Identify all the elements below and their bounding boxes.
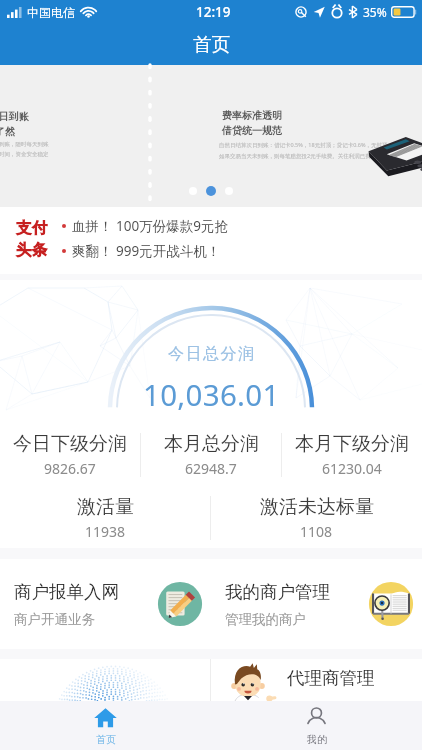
button[interactable]: 激活未达标量 (211, 485, 422, 551)
staticText: T次日到账 (0, 109, 29, 123)
staticText: 一目了然 (0, 125, 15, 138)
button[interactable]: 我的 (211, 701, 422, 750)
staticText: 我的商户管理 (225, 581, 330, 603)
button[interactable]: 今日下级分润 (0, 424, 140, 486)
staticText: 如果交易当天未到账，则每笔赔您投2元手续费。关住利润已费用 (219, 152, 377, 160)
button[interactable]: 代理商管理 (211, 659, 422, 701)
staticText: 12:19 (196, 3, 231, 21)
staticText: 首页 (193, 33, 230, 56)
staticText: 9826.67 (44, 459, 96, 478)
staticText: 借贷统一规范 (222, 124, 282, 137)
staticText: 商户报单入网 (14, 581, 119, 603)
staticText: 血拼！ 100万份爆款9元抢 (72, 217, 228, 235)
button[interactable]: T次日到账 (0, 65, 422, 207)
staticText: 支付 (16, 218, 49, 238)
staticText: 本月下级分润 (295, 432, 409, 456)
staticText: 激活量 (77, 495, 134, 519)
staticText: 62948.7 (185, 459, 237, 478)
staticText: 35% (363, 4, 387, 20)
staticText: 61230.04 (322, 459, 382, 478)
staticText: 费率标准透明 (222, 109, 282, 122)
staticText: 爽翻！ 999元开战斗机！ (72, 242, 221, 260)
staticText: 10,036.01 (143, 374, 280, 414)
staticText: 头条 (16, 240, 49, 260)
staticText: 自然日结算次日到账：借记卡0.5%，18元封顶；贷记卡0.6%，无封顶 (219, 141, 388, 149)
staticText: 代理商管理 (287, 667, 375, 689)
button[interactable]: 我的商户管理 (211, 559, 422, 649)
button[interactable]: 首页 (0, 701, 211, 750)
staticText: 今日总分润 (168, 344, 256, 364)
button[interactable]: 更多 (0, 659, 210, 701)
button[interactable]: 本月总分润 (141, 424, 281, 486)
staticText: 交易时间，资金安全稳定 (0, 151, 49, 158)
staticText: 首页 (96, 733, 116, 746)
staticText: 1108 (300, 522, 333, 541)
staticText: 本月总分润 (164, 432, 259, 456)
staticText: 中国电信 (27, 5, 75, 20)
staticText: 今日下级分润 (13, 432, 127, 456)
staticText: 管理我的商户 (225, 611, 306, 628)
staticText: 天天到账，随时每天到账 (0, 141, 49, 148)
staticText: 商户开通业务 (14, 611, 95, 628)
staticText: 激活未达标量 (260, 495, 374, 519)
staticText: 我的 (307, 733, 327, 746)
button[interactable]: 商户报单入网 (0, 559, 211, 649)
staticText: 11938 (85, 522, 126, 541)
button[interactable]: 激活量 (0, 485, 210, 551)
button[interactable]: 本月下级分润 (282, 424, 422, 486)
button[interactable]: 支付 (0, 207, 422, 274)
